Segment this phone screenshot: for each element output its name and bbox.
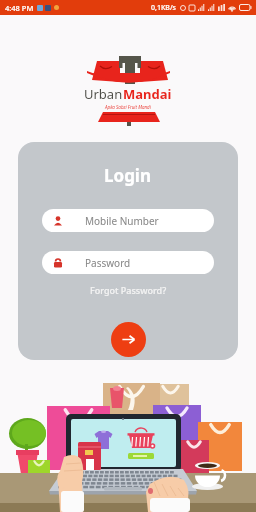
staticText: 4:48 PM <box>5 3 34 13</box>
button[interactable]: Forgot Password? <box>84 282 173 298</box>
staticText: 0,1KB/s <box>151 3 177 13</box>
button[interactable]: Password <box>42 251 214 274</box>
staticText: Urban <box>84 85 123 103</box>
staticText: Mobile Number <box>85 214 159 228</box>
staticText: Login <box>104 164 152 187</box>
staticText: Password <box>85 256 131 270</box>
button[interactable]: Mobile Number <box>42 209 214 232</box>
staticText: Mandai <box>123 85 172 103</box>
staticText: Forgot Password? <box>90 284 167 296</box>
button[interactable]: Sign in <box>111 322 146 357</box>
staticText: Apka Sabzi Fruit Mandi <box>105 104 151 110</box>
